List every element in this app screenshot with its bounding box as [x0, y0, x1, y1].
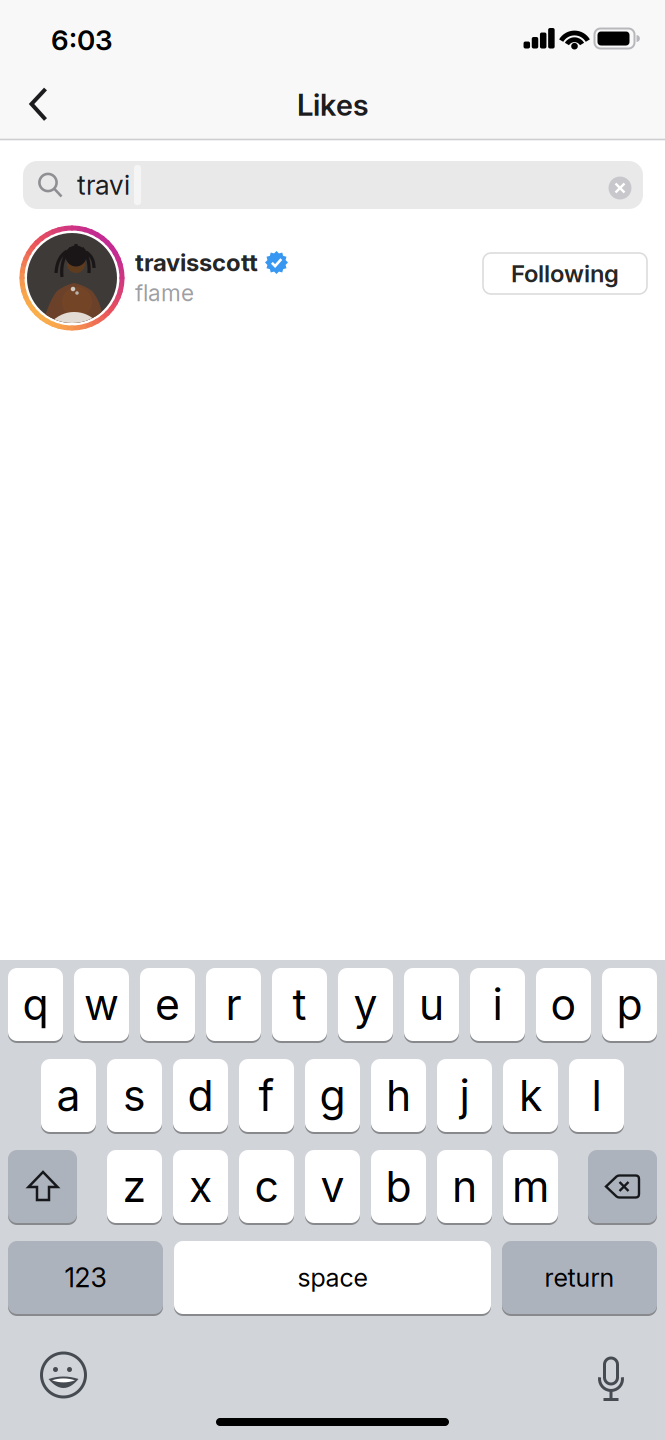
staticText: q — [22, 979, 48, 1030]
staticText: d — [187, 1070, 213, 1121]
button[interactable]: i — [470, 967, 525, 1042]
staticText: t — [292, 979, 306, 1030]
button[interactable]: Emoji — [39, 1351, 87, 1399]
button[interactable]: c — [239, 1149, 294, 1224]
staticText: o — [550, 979, 576, 1030]
staticText: c — [254, 1161, 278, 1212]
staticText: y — [353, 979, 377, 1030]
button[interactable]: Following — [483, 253, 647, 294]
staticText: return — [544, 1263, 614, 1292]
staticText: e — [155, 979, 180, 1030]
staticText: s — [123, 1070, 146, 1121]
staticText: w — [84, 979, 119, 1030]
button[interactable]: Search — [23, 161, 643, 209]
button[interactable]: o — [536, 967, 591, 1042]
button[interactable]: h — [371, 1058, 426, 1133]
button[interactable]: p — [602, 967, 657, 1042]
staticText: space — [297, 1263, 367, 1292]
button[interactable]: Delete — [588, 1149, 657, 1224]
button[interactable]: space — [174, 1240, 491, 1315]
staticText: j — [459, 1070, 469, 1121]
button[interactable]: s — [107, 1058, 162, 1133]
staticText: b — [385, 1161, 411, 1212]
staticText: g — [319, 1070, 345, 1121]
button[interactable]: l — [569, 1058, 624, 1133]
staticText: n — [452, 1161, 477, 1212]
staticText: k — [519, 1070, 542, 1121]
staticText: travi — [77, 169, 130, 201]
staticText: Following — [511, 259, 619, 288]
staticText: x — [189, 1161, 212, 1212]
button[interactable]: t — [272, 967, 327, 1042]
button[interactable]: w — [74, 967, 129, 1042]
staticText: 6:03 — [51, 23, 113, 56]
button[interactable]: Dictation — [587, 1352, 635, 1400]
staticText: Likes — [297, 88, 369, 122]
button[interactable]: travisscott — [0, 221, 665, 336]
staticText: travisscott — [135, 248, 258, 277]
button[interactable]: 123 — [8, 1240, 163, 1315]
staticText: v — [320, 1161, 344, 1212]
button[interactable]: b — [371, 1149, 426, 1224]
button[interactable]: z — [107, 1149, 162, 1224]
button[interactable]: Back — [8, 74, 68, 134]
button[interactable]: j — [437, 1058, 492, 1133]
button[interactable]: u — [404, 967, 459, 1042]
button[interactable]: q — [8, 967, 63, 1042]
button[interactable]: n — [437, 1149, 492, 1224]
button[interactable]: return — [502, 1240, 657, 1315]
button[interactable]: d — [173, 1058, 228, 1133]
staticText: a — [56, 1070, 80, 1121]
button[interactable]: v — [305, 1149, 360, 1224]
staticText: i — [492, 979, 502, 1030]
staticText: r — [225, 979, 241, 1030]
staticText: u — [419, 979, 444, 1030]
staticText: l — [591, 1070, 601, 1121]
button[interactable]: r — [206, 967, 261, 1042]
staticText: 123 — [64, 1262, 106, 1293]
staticText: h — [386, 1070, 411, 1121]
button[interactable]: Shift — [8, 1149, 77, 1224]
button[interactable]: m — [503, 1149, 558, 1224]
staticText: f — [258, 1070, 274, 1121]
button[interactable]: g — [305, 1058, 360, 1133]
button[interactable]: f — [239, 1058, 294, 1133]
button[interactable]: Clear search text — [608, 176, 631, 199]
staticText: p — [616, 979, 642, 1030]
staticText: z — [122, 1161, 146, 1212]
staticText: flame — [135, 280, 194, 306]
button[interactable]: k — [503, 1058, 558, 1133]
button[interactable]: e — [140, 967, 195, 1042]
button[interactable]: x — [173, 1149, 228, 1224]
button[interactable]: a — [41, 1058, 96, 1133]
button[interactable]: y — [338, 967, 393, 1042]
staticText: m — [512, 1161, 549, 1212]
